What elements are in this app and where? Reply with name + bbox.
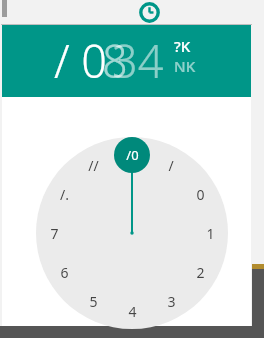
staticText: 5	[89, 292, 98, 311]
button[interactable]: 5	[77, 290, 109, 312]
staticText: NK	[174, 56, 196, 75]
button[interactable]: /0	[116, 144, 148, 166]
staticText: 8	[102, 30, 128, 82]
button[interactable]: /	[155, 154, 187, 176]
staticText: ?K	[174, 36, 191, 55]
button[interactable]: 2	[184, 261, 216, 283]
staticText: 4	[128, 302, 137, 321]
button[interactable]: 4	[116, 300, 148, 322]
button[interactable]: /.	[48, 183, 80, 205]
button[interactable]: Switch to clock input	[139, 2, 160, 23]
button[interactable]: 0	[184, 183, 216, 205]
staticText: / 0	[54, 30, 108, 82]
button[interactable]: 6	[48, 261, 80, 283]
staticText: 34	[112, 30, 164, 82]
staticText: 3	[167, 292, 176, 311]
button[interactable]: 7	[38, 222, 70, 244]
staticText: 1	[206, 224, 215, 243]
staticText: 0	[196, 185, 205, 204]
button[interactable]: ?K	[174, 36, 206, 55]
button[interactable]: / 0	[54, 34, 172, 86]
staticText: /0	[126, 146, 139, 164]
button[interactable]: NK	[174, 56, 206, 75]
button[interactable]: 1	[194, 222, 226, 244]
button[interactable]: //	[77, 154, 109, 176]
staticText: 6	[60, 263, 69, 282]
button[interactable]: 3	[155, 290, 187, 312]
staticText: //	[88, 156, 99, 175]
staticText: /	[168, 156, 174, 175]
staticText: 2	[196, 263, 205, 282]
staticText: 7	[50, 224, 59, 243]
staticText: /.	[60, 185, 69, 204]
